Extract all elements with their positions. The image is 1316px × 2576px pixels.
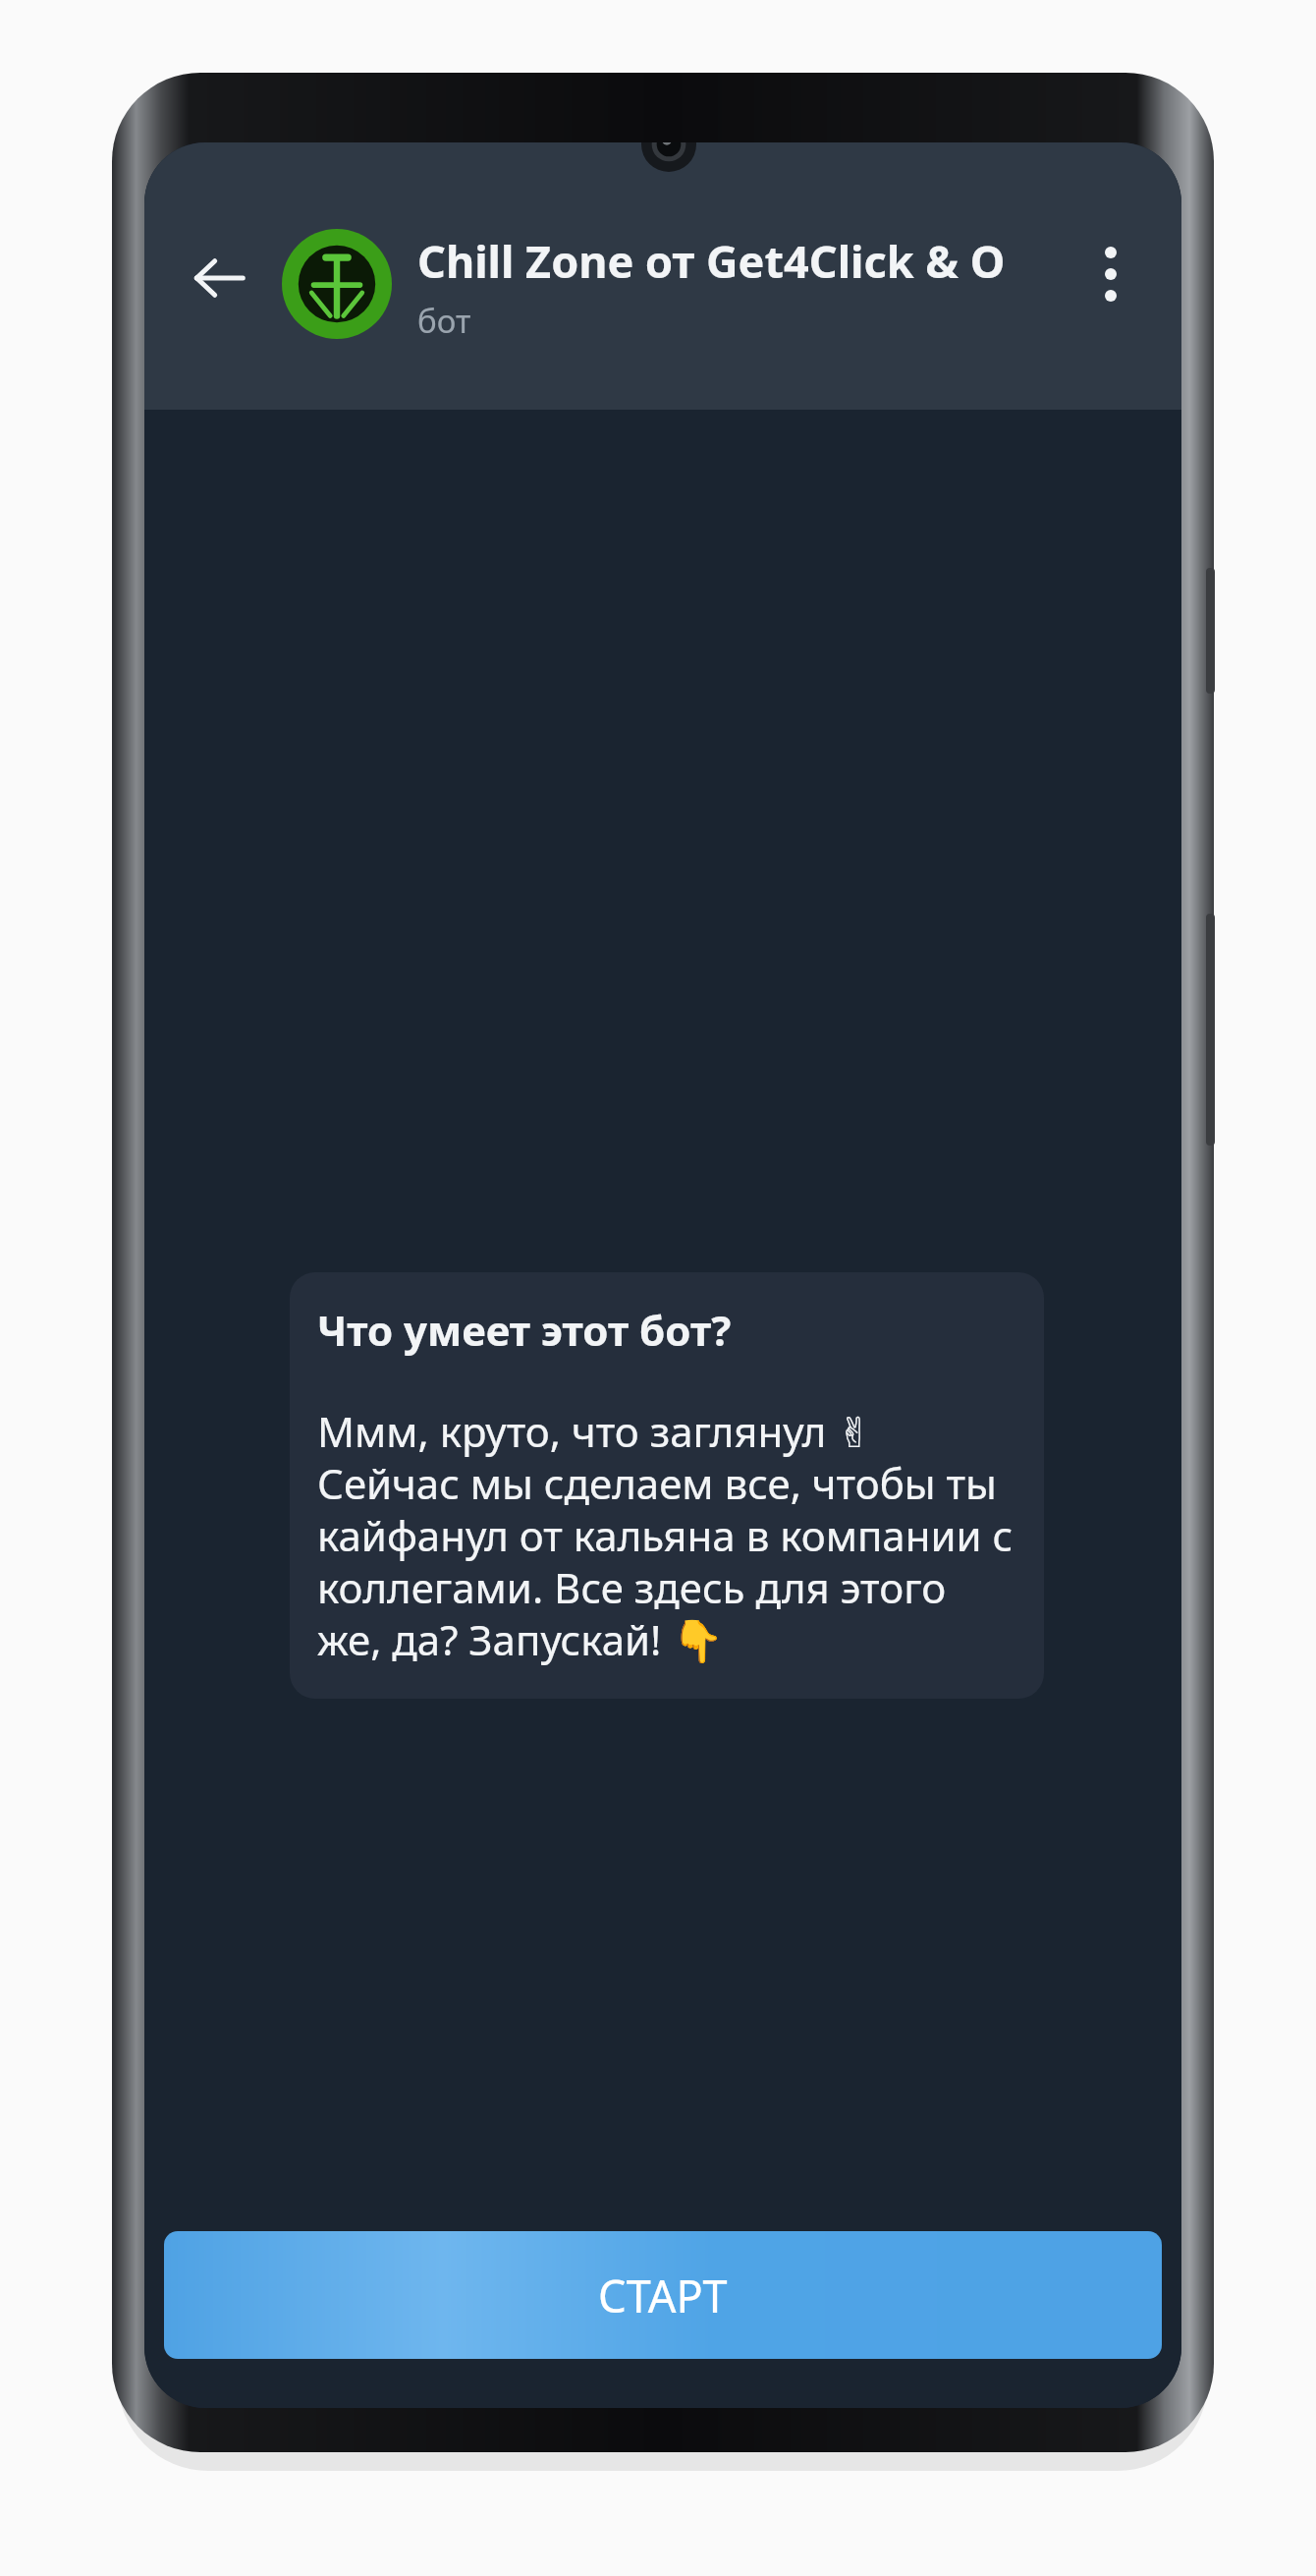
staticText: СТАРТ xyxy=(598,2266,728,2325)
button[interactable]: More options xyxy=(1062,225,1160,323)
staticText: бот xyxy=(417,299,471,343)
button[interactable]: Что умеет этот бот? xyxy=(290,1272,1044,1699)
button[interactable]: Back xyxy=(166,225,272,331)
staticText: Chill Zone от Get4Click & O xyxy=(417,231,1006,291)
staticText: Что умеет этот бот? xyxy=(317,1302,732,1358)
button[interactable]: СТАРТ xyxy=(164,2231,1162,2359)
staticText: Ммм, круто, что заглянул ✌️ Сейчас мы сд… xyxy=(317,1403,1020,1667)
